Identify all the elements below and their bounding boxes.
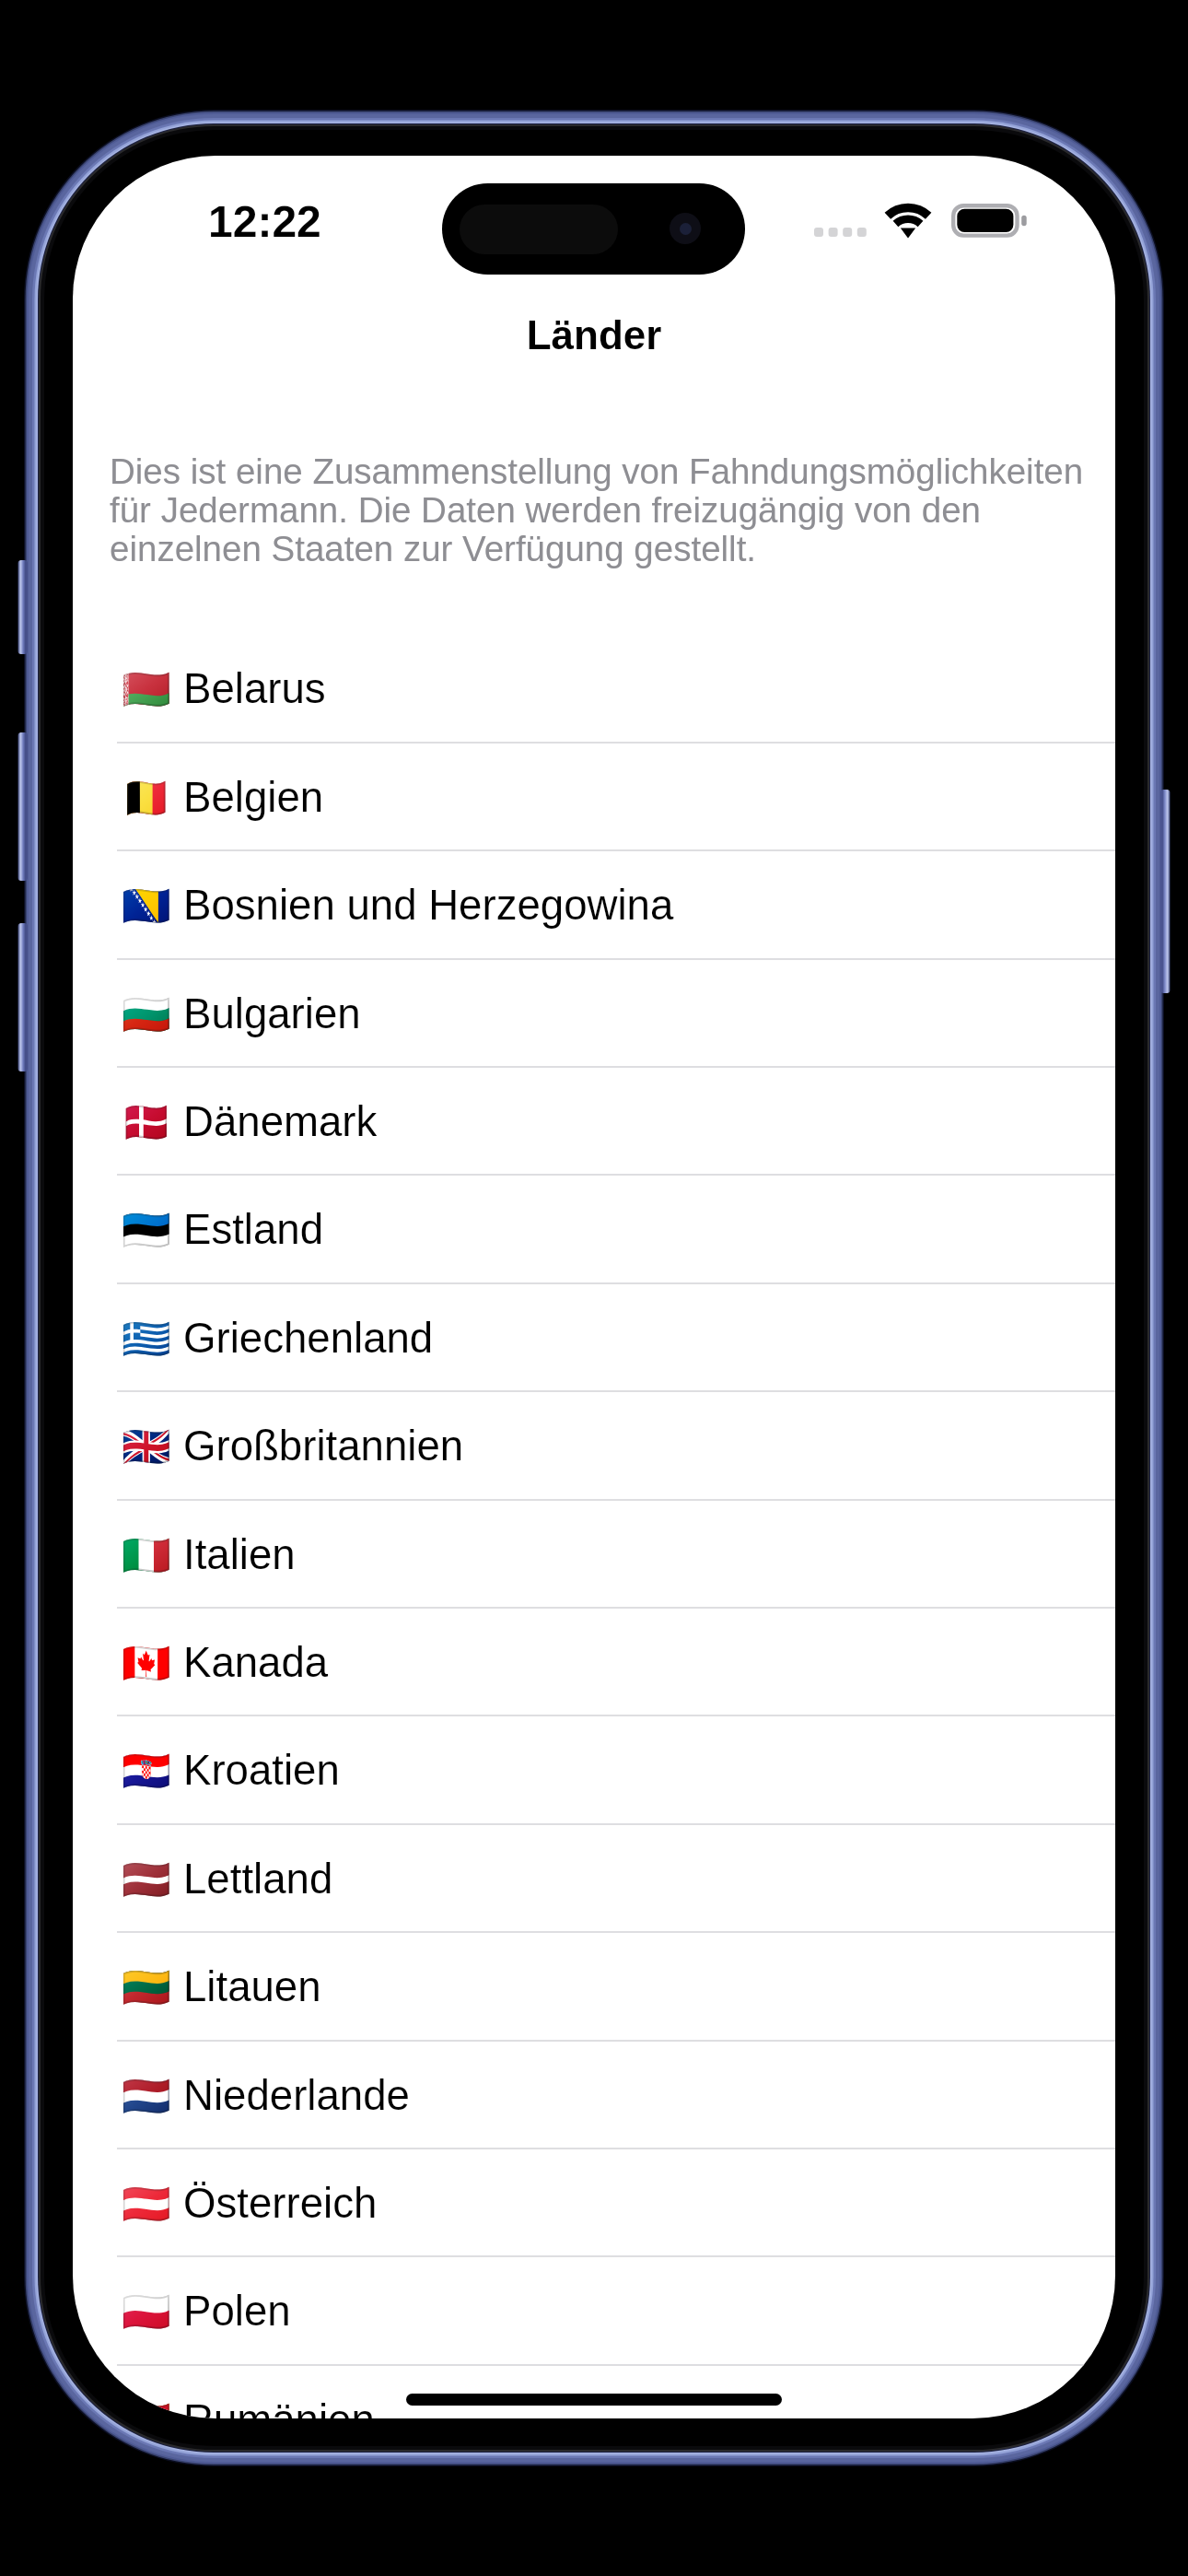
button[interactable]: 🇧🇾: [73, 635, 1115, 743]
staticText: 🇱🇹: [122, 1964, 166, 2010]
staticText: 🇳🇱: [122, 2073, 166, 2119]
staticText: 🇧🇪: [122, 775, 166, 821]
staticText: 12:22: [208, 197, 321, 247]
staticText: 🇬🇷: [122, 1316, 166, 1362]
staticText: 🇧🇬: [122, 991, 166, 1037]
staticText: Länder: [73, 312, 1115, 357]
button[interactable]: 🇷🇴: [73, 2366, 1115, 2418]
staticText: Dänemark: [183, 1098, 378, 1145]
staticText: Großbritannien: [183, 1423, 464, 1469]
button[interactable]: 🇱🇻: [73, 1825, 1115, 1933]
button[interactable]: 🇧🇦: [73, 851, 1115, 959]
button[interactable]: 🇳🇱: [73, 2042, 1115, 2149]
button[interactable]: 🇭🇷: [73, 1716, 1115, 1824]
staticText: Griechenland: [183, 1315, 434, 1362]
staticText: Kroatien: [183, 1747, 340, 1794]
staticText: 🇨🇦: [122, 1640, 166, 1686]
staticText: Kanada: [183, 1639, 329, 1686]
staticText: 🇵🇱: [122, 2289, 166, 2335]
staticText: 🇧🇦: [122, 883, 166, 929]
button[interactable]: 🇮🇹: [73, 1501, 1115, 1609]
button[interactable]: 🇬🇧: [73, 1392, 1115, 1500]
other: WLAN: [884, 203, 932, 238]
staticText: Lettland: [183, 1856, 333, 1903]
staticText: 🇮🇹: [122, 1532, 166, 1578]
button[interactable]: 🇦🇹: [73, 2149, 1115, 2257]
staticText: 🇷🇴: [122, 2397, 166, 2418]
staticText: Dies ist eine Zusammenstellung von Fahnd…: [110, 451, 1104, 568]
staticText: Rumänien: [183, 2396, 375, 2418]
button[interactable]: 🇪🇪: [73, 1176, 1115, 1283]
other: Batterie: [951, 204, 1028, 239]
staticText: 🇩🇰: [122, 1099, 166, 1145]
staticText: Belarus: [183, 665, 326, 712]
button[interactable]: 🇧🇬: [73, 960, 1115, 1068]
button[interactable]: 🇵🇱: [73, 2257, 1115, 2365]
staticText: Polen: [183, 2288, 291, 2335]
button[interactable]: 🇱🇹: [73, 1933, 1115, 2041]
staticText: Belgien: [183, 774, 324, 821]
staticText: Estland: [183, 1206, 324, 1253]
staticText: Italien: [183, 1531, 296, 1578]
staticText: Bosnien und Herzegowina: [183, 882, 674, 929]
staticText: 🇦🇹: [122, 2181, 166, 2227]
staticText: 🇧🇾: [122, 666, 166, 712]
staticText: Niederlande: [183, 2072, 410, 2119]
staticText: Litauen: [183, 1963, 321, 2010]
button[interactable]: 🇨🇦: [73, 1609, 1115, 1716]
button[interactable]: 🇩🇰: [73, 1068, 1115, 1176]
staticText: 🇱🇻: [122, 1856, 166, 1903]
staticText: 🇭🇷: [122, 1748, 166, 1794]
staticText: Bulgarien: [183, 990, 361, 1037]
staticText: Österreich: [183, 2180, 378, 2227]
staticText: 🇬🇧: [122, 1423, 166, 1469]
button[interactable]: 🇧🇪: [73, 744, 1115, 851]
button[interactable]: 🇬🇷: [73, 1284, 1115, 1392]
staticText: 🇪🇪: [122, 1207, 166, 1253]
